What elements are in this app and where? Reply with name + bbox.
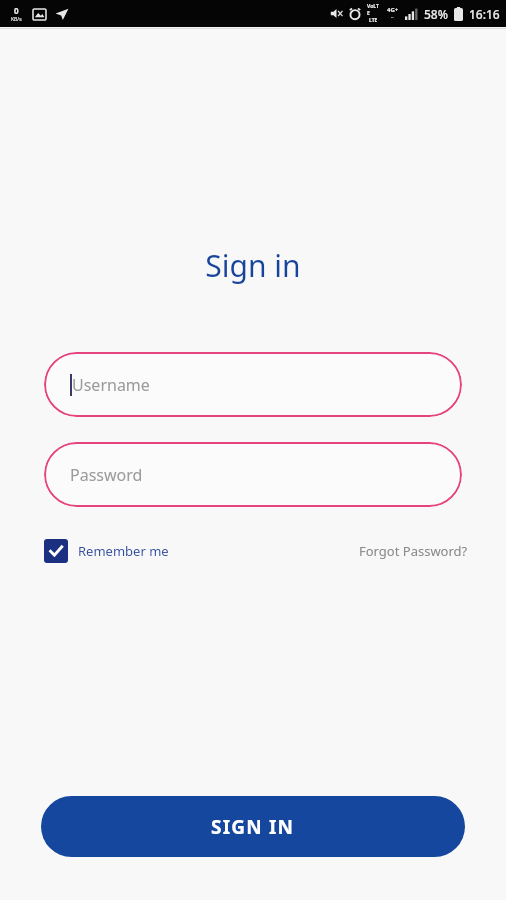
staticText: 0 bbox=[14, 5, 19, 16]
staticText: 16:16 bbox=[469, 6, 500, 22]
staticText: 4G+ bbox=[387, 6, 399, 14]
button[interactable]: Password bbox=[44, 442, 462, 507]
button[interactable]: Remember me checkbox bbox=[44, 539, 169, 563]
button[interactable]: Forgot Password? bbox=[359, 542, 468, 560]
staticText: SIGN IN bbox=[211, 814, 295, 840]
staticText: VoLTE bbox=[367, 3, 380, 17]
staticText: Username bbox=[72, 374, 150, 396]
staticText: Sign in bbox=[0, 245, 506, 286]
button[interactable]: SIGN IN bbox=[41, 796, 465, 857]
button[interactable]: Username bbox=[44, 352, 462, 417]
other: Remember me checkbox bbox=[44, 539, 68, 563]
staticText: Forgot Password? bbox=[359, 542, 468, 560]
staticText: Remember me bbox=[78, 542, 169, 560]
staticText: KB/s bbox=[11, 16, 22, 23]
staticText: 58% bbox=[424, 6, 448, 22]
staticText: LTE bbox=[369, 17, 378, 24]
staticText: Password bbox=[70, 464, 143, 486]
staticText: ·· bbox=[391, 14, 394, 21]
